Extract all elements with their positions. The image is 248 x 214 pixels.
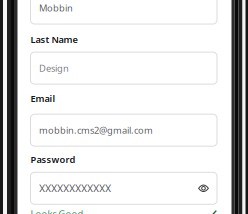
- staticText: Looks Good: [30, 207, 83, 214]
- staticText: Design: [39, 62, 69, 74]
- staticText: mobbin.cms2@gmail.com: [39, 124, 153, 136]
- button[interactable]: Design: [30, 52, 217, 84]
- staticText: Last Name: [30, 33, 77, 46]
- button[interactable]: mobbin.cms2@gmail.com: [30, 114, 217, 146]
- staticText: Email: [30, 92, 55, 105]
- button[interactable]: Mobbin: [30, 0, 217, 24]
- staticText: Mobbin: [39, 2, 73, 14]
- staticText: Password: [30, 153, 75, 165]
- staticText: XXXXXXXXXXXX: [39, 181, 111, 195]
- button[interactable]: XXXXXXXXXXXX: [30, 172, 217, 204]
